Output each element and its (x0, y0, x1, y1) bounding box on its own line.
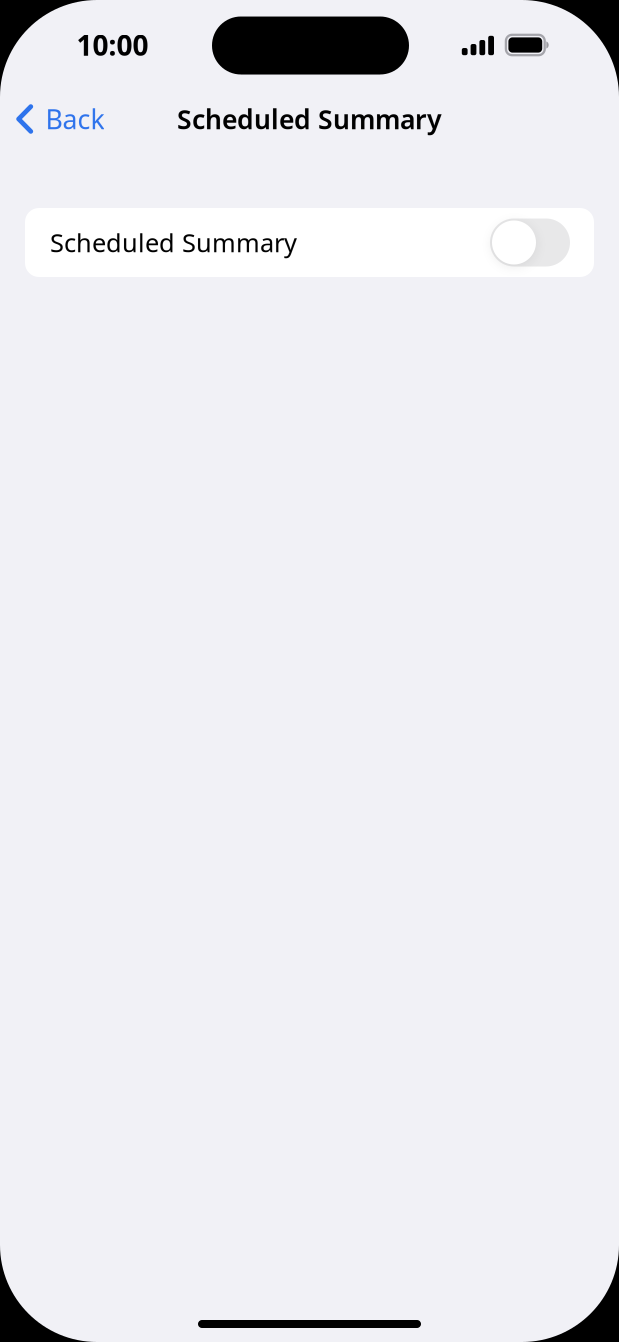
button[interactable]: Scheduled Summary (25, 208, 594, 277)
button[interactable]: Back (0, 93, 114, 145)
staticText: Scheduled Summary (177, 101, 442, 137)
staticText: Scheduled Summary (50, 226, 297, 259)
button[interactable]: Off (490, 218, 570, 266)
staticText: Back (45, 101, 104, 137)
staticText: 10:00 (76, 26, 148, 64)
